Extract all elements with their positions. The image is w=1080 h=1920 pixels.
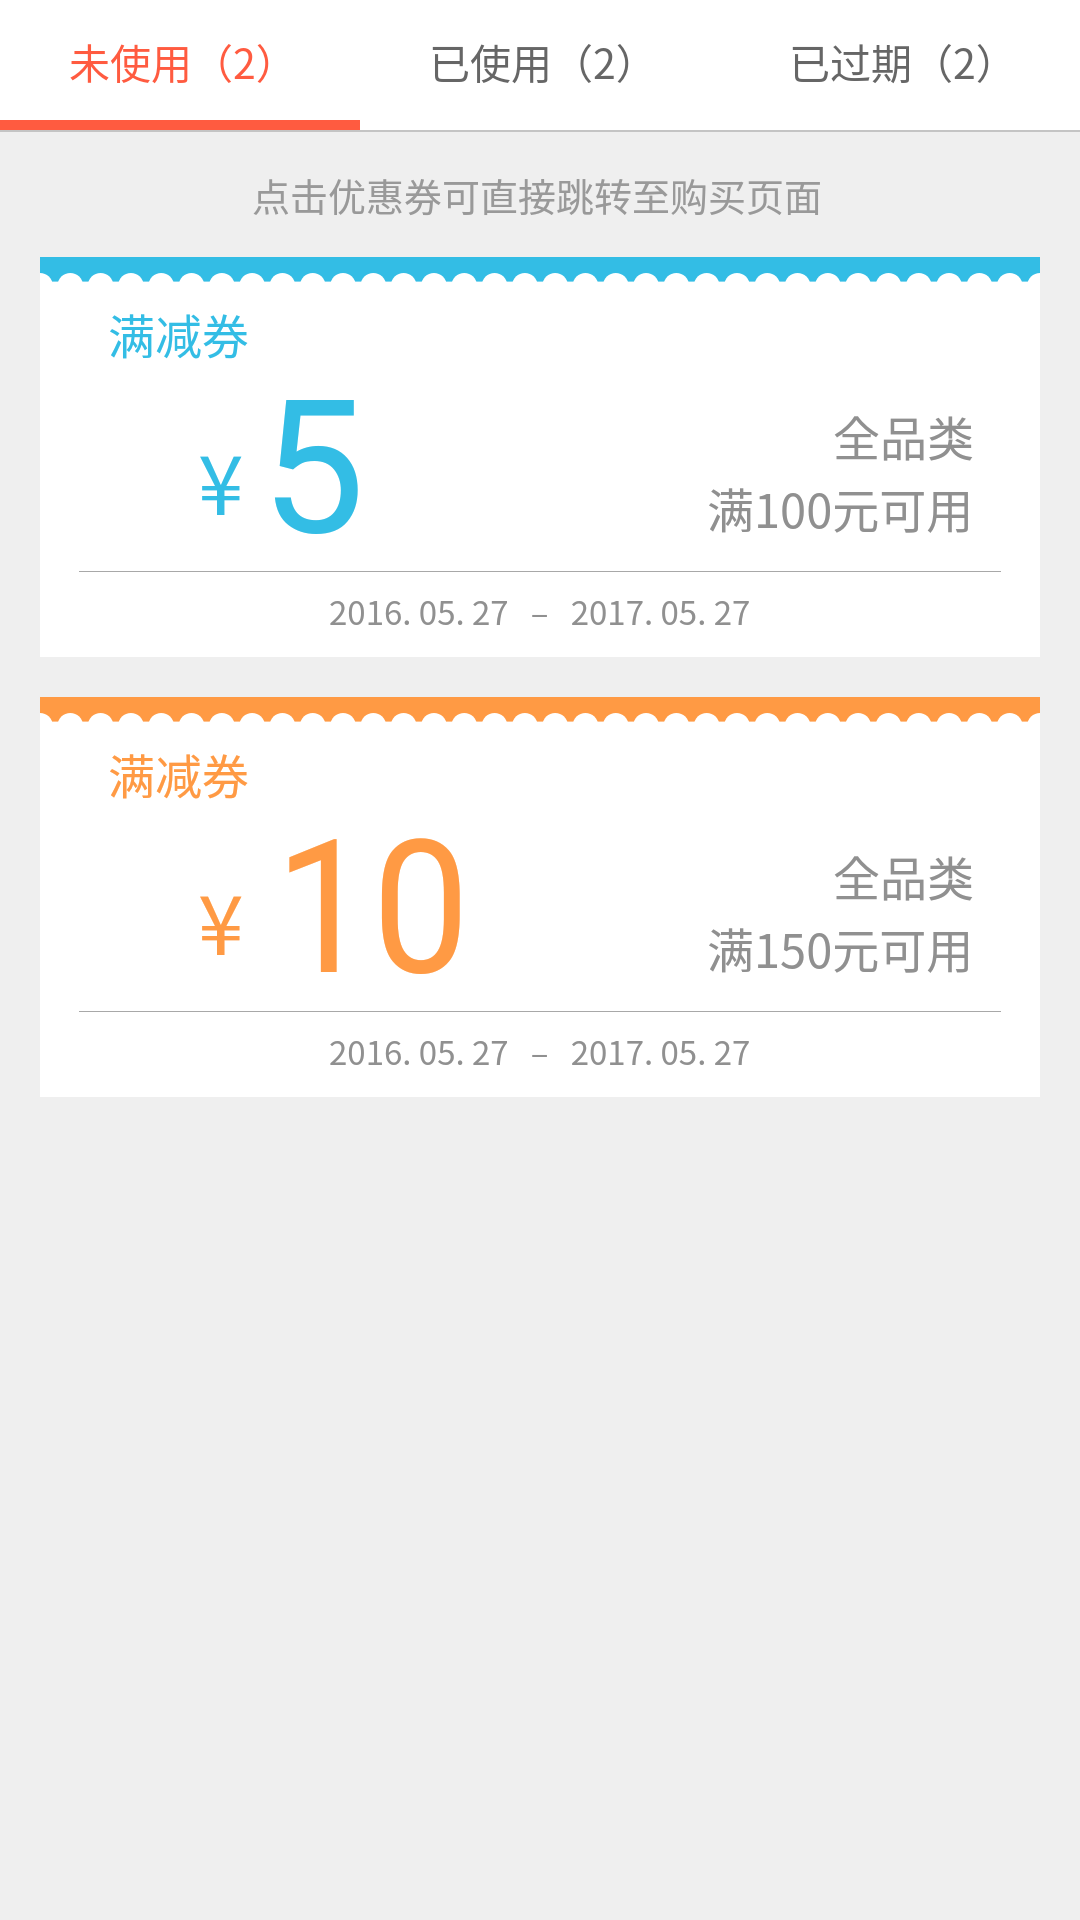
staticText: 满150元可用 [707,913,974,981]
button[interactable]: 已使用（2） [360,0,720,130]
staticText: 已过期（2） [789,31,1017,90]
button[interactable]: 满减券 [40,697,1040,1097]
staticText: 未使用（2） [69,31,297,90]
staticText: 已使用（2） [429,31,657,90]
staticText: 满减券 [108,739,249,807]
staticText: 满100元可用 [707,473,974,541]
staticText: ¥ [198,860,244,979]
button[interactable]: 未使用（2） [0,0,360,130]
staticText: 点击优惠券可直接跳转至购买页面 [252,167,823,222]
staticText: 10 [275,800,469,1017]
staticText: 5 [261,360,365,577]
staticText: 2016. 05. 27 – 2017. 05. 27 [329,1027,751,1075]
staticText: 2016. 05. 27 – 2017. 05. 27 [329,587,751,635]
staticText: 满减券 [108,299,249,367]
button[interactable]: 已过期（2） [720,0,1080,130]
staticText: 全品类 [833,841,974,909]
staticText: 全品类 [833,401,974,469]
staticText: ¥ [198,420,244,539]
button[interactable]: 满减券 [40,257,1040,657]
